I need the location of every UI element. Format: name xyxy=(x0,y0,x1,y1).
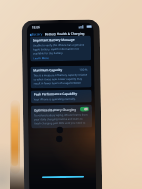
staticText: Unable to verify this iPhone has a genui… xyxy=(33,43,88,55)
button[interactable]: Battery xyxy=(29,32,44,36)
staticText: Maximum Capacity xyxy=(33,68,62,72)
staticText: 100 % xyxy=(79,68,88,72)
staticText: Important Battery Message xyxy=(33,38,75,42)
button[interactable]: Maximum Capacity xyxy=(30,65,92,88)
staticText: To reduce battery aging, iPhone learns f… xyxy=(34,113,89,126)
staticText: 18:06 xyxy=(32,25,41,29)
staticText: Peak Performance Capability xyxy=(34,92,78,96)
button[interactable]: Important Battery Message xyxy=(30,35,91,61)
staticText: Battery Health & Charging xyxy=(45,32,85,36)
staticText: Battery xyxy=(32,32,43,36)
staticText: Optimized Battery Charging xyxy=(34,108,77,112)
button[interactable]: Learn More xyxy=(33,56,49,59)
button[interactable]: Optimized Battery Charging xyxy=(31,104,92,128)
staticText: Learn More xyxy=(33,56,49,59)
button[interactable]: Optimized Battery Charging toggle xyxy=(80,107,89,112)
staticText: Your iPhone is operating normally. xyxy=(34,97,76,101)
button[interactable]: Peak Performance Capability xyxy=(31,89,92,103)
staticText: This is a measure of battery capacity re… xyxy=(33,73,89,86)
